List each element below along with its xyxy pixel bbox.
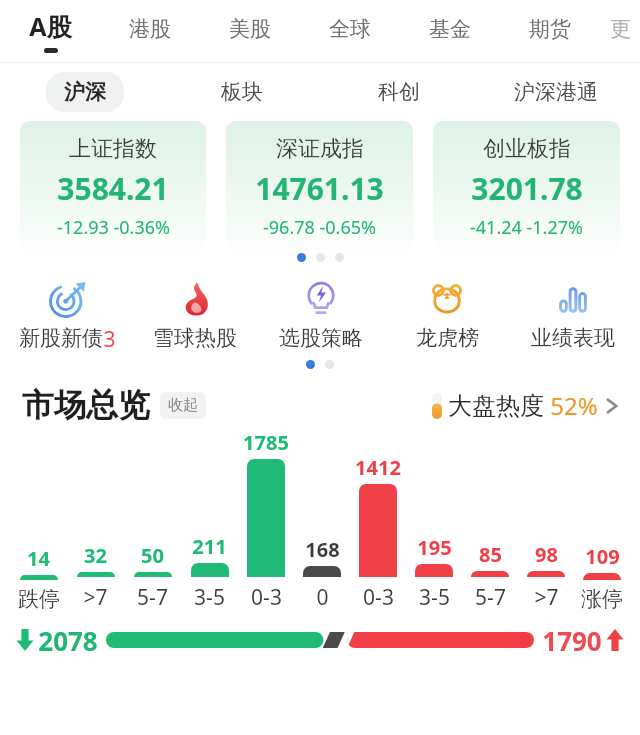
staticText: 195 [417,534,452,561]
staticText: 港股 [129,16,171,42]
staticText: 新股新债 [19,325,103,351]
staticText: 1785 [243,429,289,456]
staticText: 基金 [429,16,471,42]
staticText: 沪深港通 [514,79,598,105]
staticText: 业绩表现 [531,325,615,351]
staticText: 美股 [229,16,271,42]
staticText: 109 [585,543,620,570]
staticText: 32 [84,542,107,569]
staticText: 5-7 [475,583,506,612]
button[interactable]: 大盘热度 [432,389,618,422]
staticText: 85 [479,541,502,568]
staticText: 0-3 [363,583,394,612]
staticText: 跌停 [18,586,60,612]
staticText: 168 [305,536,340,563]
button[interactable]: 雪球热股 [131,276,258,353]
staticText: 2078 [38,623,98,658]
button[interactable]: 32 [67,542,124,612]
staticText: 全球 [329,16,371,42]
staticText: 雪球热股 [153,325,237,351]
staticText: 50 [141,542,164,569]
other: 雪球热股 [177,281,213,317]
button[interactable]: 85 [462,541,518,612]
staticText: 收起 [168,396,198,415]
staticText: 涨停 [581,586,623,612]
button[interactable]: 新股新债 [4,276,131,356]
button[interactable]: 全球 [300,0,400,62]
other: 选股策略 [303,281,339,317]
button[interactable]: 板块 [203,72,281,112]
other: 更多 [606,396,618,416]
button[interactable]: 98 [518,541,574,612]
button[interactable]: 211 [181,533,238,612]
button[interactable]: 美股 [200,0,300,62]
button[interactable]: 基金 [400,0,500,62]
button[interactable]: 1785 [238,429,294,612]
button[interactable]: 109 [574,543,630,612]
staticText: 市场总览 [22,385,150,425]
other: 龙虎榜 [429,281,465,317]
button[interactable]: 业绩表现 [510,276,636,353]
button[interactable]: 龙虎榜 [384,276,510,353]
button[interactable]: 深证成指 [226,121,413,251]
staticText: 龙虎榜 [416,325,479,351]
button[interactable]: 沪深港通 [496,72,616,112]
button[interactable]: 创业板指 [433,121,620,251]
staticText: 3-5 [194,583,225,612]
button[interactable]: A股 [0,0,100,62]
button[interactable]: 168 [294,536,350,612]
staticText: 211 [192,533,227,560]
staticText: 1790 [542,623,602,658]
button[interactable]: 选股策略 [258,276,384,353]
staticText: -41.24 -1.27% [470,215,583,240]
staticText: 0-3 [251,583,282,612]
staticText: 期货 [529,16,571,42]
staticText: 板块 [221,79,263,105]
staticText: 98 [535,541,558,568]
staticText: 科创 [378,79,420,105]
staticText: 选股策略 [279,325,363,351]
other: 新股新债 [49,280,87,318]
staticText: 更 [610,16,631,42]
staticText: 14 [27,545,50,572]
staticText: 上证指数 [69,135,157,163]
staticText: 0 [316,583,329,612]
other: 业绩表现 [556,282,590,316]
button[interactable]: 更 [600,0,640,62]
button[interactable]: 14 [10,545,67,612]
staticText: 3 [103,325,116,354]
button[interactable]: 期货 [500,0,600,62]
button[interactable]: 市场总览 [22,385,206,425]
staticText: 深证成指 [276,135,364,163]
staticText: 1412 [355,454,401,481]
button[interactable]: 沪深 [46,72,124,112]
button[interactable]: 1412 [350,454,406,612]
staticText: 创业板指 [483,135,571,163]
staticText: 大盘热度 [448,391,544,421]
button[interactable]: 50 [124,542,181,612]
staticText: 14761.13 [255,168,384,209]
staticText: 5-7 [137,583,168,612]
button[interactable]: 上证指数 [20,121,206,251]
staticText: A股 [29,9,72,43]
button[interactable]: 港股 [100,0,200,62]
staticText: 3584.21 [57,168,169,209]
staticText: -96.78 -0.65% [263,215,376,240]
staticText: >7 [534,583,559,612]
staticText: 3-5 [419,583,450,612]
button[interactable]: 科创 [360,72,438,112]
button[interactable]: 195 [406,534,462,612]
staticText: 52% [550,389,598,422]
staticText: 沪深 [64,79,106,105]
staticText: -12.93 -0.36% [57,215,170,240]
staticText: >7 [83,583,108,612]
staticText: 3201.78 [471,168,583,209]
